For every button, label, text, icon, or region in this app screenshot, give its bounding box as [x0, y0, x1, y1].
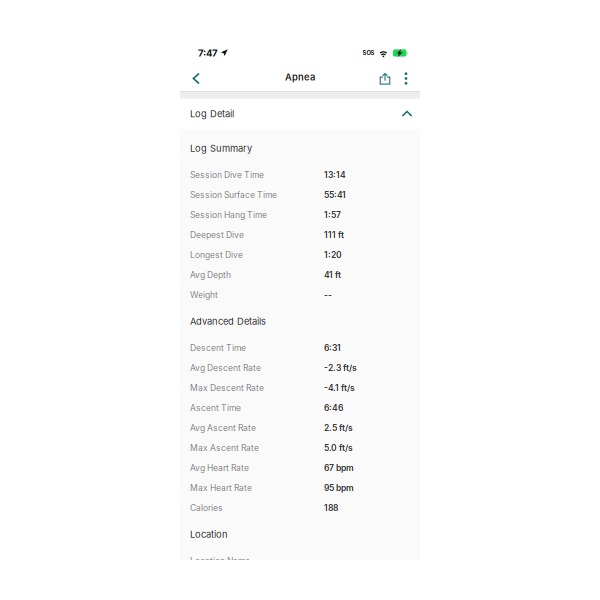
staticText: 55:41 — [324, 190, 346, 200]
staticText: 7:47 — [198, 47, 218, 59]
staticText: Avg Heart Rate — [190, 463, 249, 473]
staticText: 1:57 — [324, 210, 341, 220]
staticText: Log Summary — [190, 143, 252, 154]
button[interactable]: Back — [184, 65, 208, 91]
staticText: Session Surface Time — [190, 190, 277, 200]
staticText: Descent Time — [190, 343, 246, 353]
button[interactable]: More options — [396, 65, 416, 91]
staticText: 111 ft — [324, 230, 344, 240]
staticText: Session Dive Time — [190, 170, 264, 180]
staticText: Weight — [190, 290, 218, 300]
staticText: SOS — [362, 49, 374, 56]
staticText: -2.3 ft/s — [324, 363, 357, 373]
staticText: 188 — [324, 503, 338, 513]
staticText: Location — [190, 529, 228, 540]
staticText: Max Heart Rate — [190, 483, 252, 493]
staticText: 6:46 — [324, 403, 343, 413]
staticText: Avg Depth — [190, 270, 231, 280]
staticText: 13:14 — [324, 170, 346, 180]
staticText: Session Hang Time — [190, 210, 267, 220]
staticText: 67 bpm — [324, 463, 354, 473]
staticText: Log Detail — [190, 108, 234, 120]
staticText: 41 ft — [324, 270, 341, 280]
button[interactable]: Share — [374, 65, 396, 91]
staticText: 95 bpm — [324, 483, 354, 493]
staticText: 5.0 ft/s — [324, 443, 353, 453]
staticText: -4.1 ft/s — [324, 383, 355, 393]
staticText: 2.5 ft/s — [324, 423, 353, 433]
staticText: Calories — [190, 503, 223, 513]
staticText: Apnea — [285, 71, 315, 83]
staticText: Avg Ascent Rate — [190, 423, 256, 433]
staticText: -- — [324, 290, 332, 300]
button[interactable]: Log Detail — [180, 99, 420, 129]
staticText: 1:20 — [324, 250, 342, 260]
staticText: Longest Dive — [190, 250, 243, 260]
staticText: Ascent Time — [190, 403, 241, 413]
staticText: Max Ascent Rate — [190, 443, 259, 453]
staticText: Avg Descent Rate — [190, 363, 261, 373]
staticText: Advanced Details — [190, 316, 266, 327]
staticText: Max Descent Rate — [190, 383, 264, 393]
staticText: 6:31 — [324, 343, 341, 353]
staticText: Location Name — [190, 556, 250, 566]
staticText: Deepest Dive — [190, 230, 244, 240]
